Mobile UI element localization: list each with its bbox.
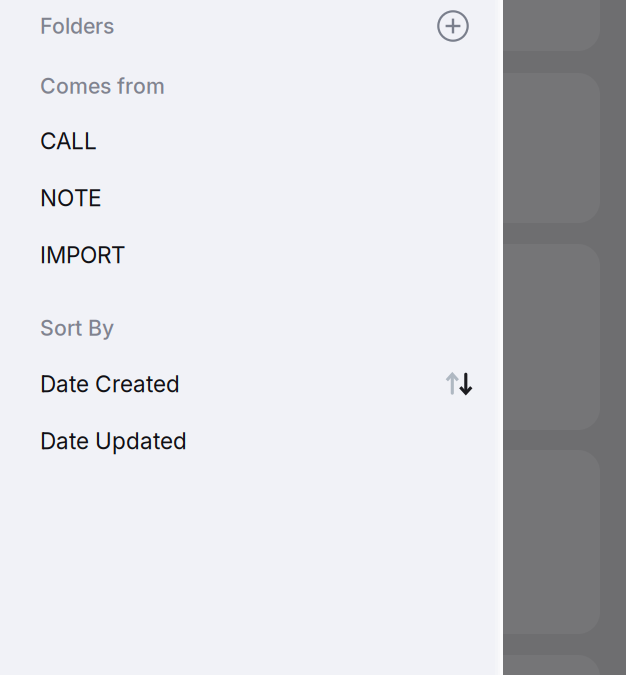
staticText: Folders [40, 13, 114, 39]
staticText: CALL [40, 127, 97, 155]
button[interactable]: IMPORT [40, 226, 503, 284]
button[interactable]: Add folder [426, 0, 480, 53]
button[interactable]: Date Created [40, 355, 472, 413]
button[interactable]: CALL [40, 112, 503, 170]
staticText: Date Updated [40, 427, 187, 455]
staticText: Comes from [40, 73, 165, 99]
staticText: NOTE [40, 184, 102, 212]
button[interactable]: Date Updated [40, 412, 472, 470]
staticText: Date Created [40, 370, 180, 398]
staticText: Sort By [40, 315, 114, 341]
button[interactable]: NOTE [40, 169, 503, 227]
staticText: IMPORT [40, 241, 125, 269]
